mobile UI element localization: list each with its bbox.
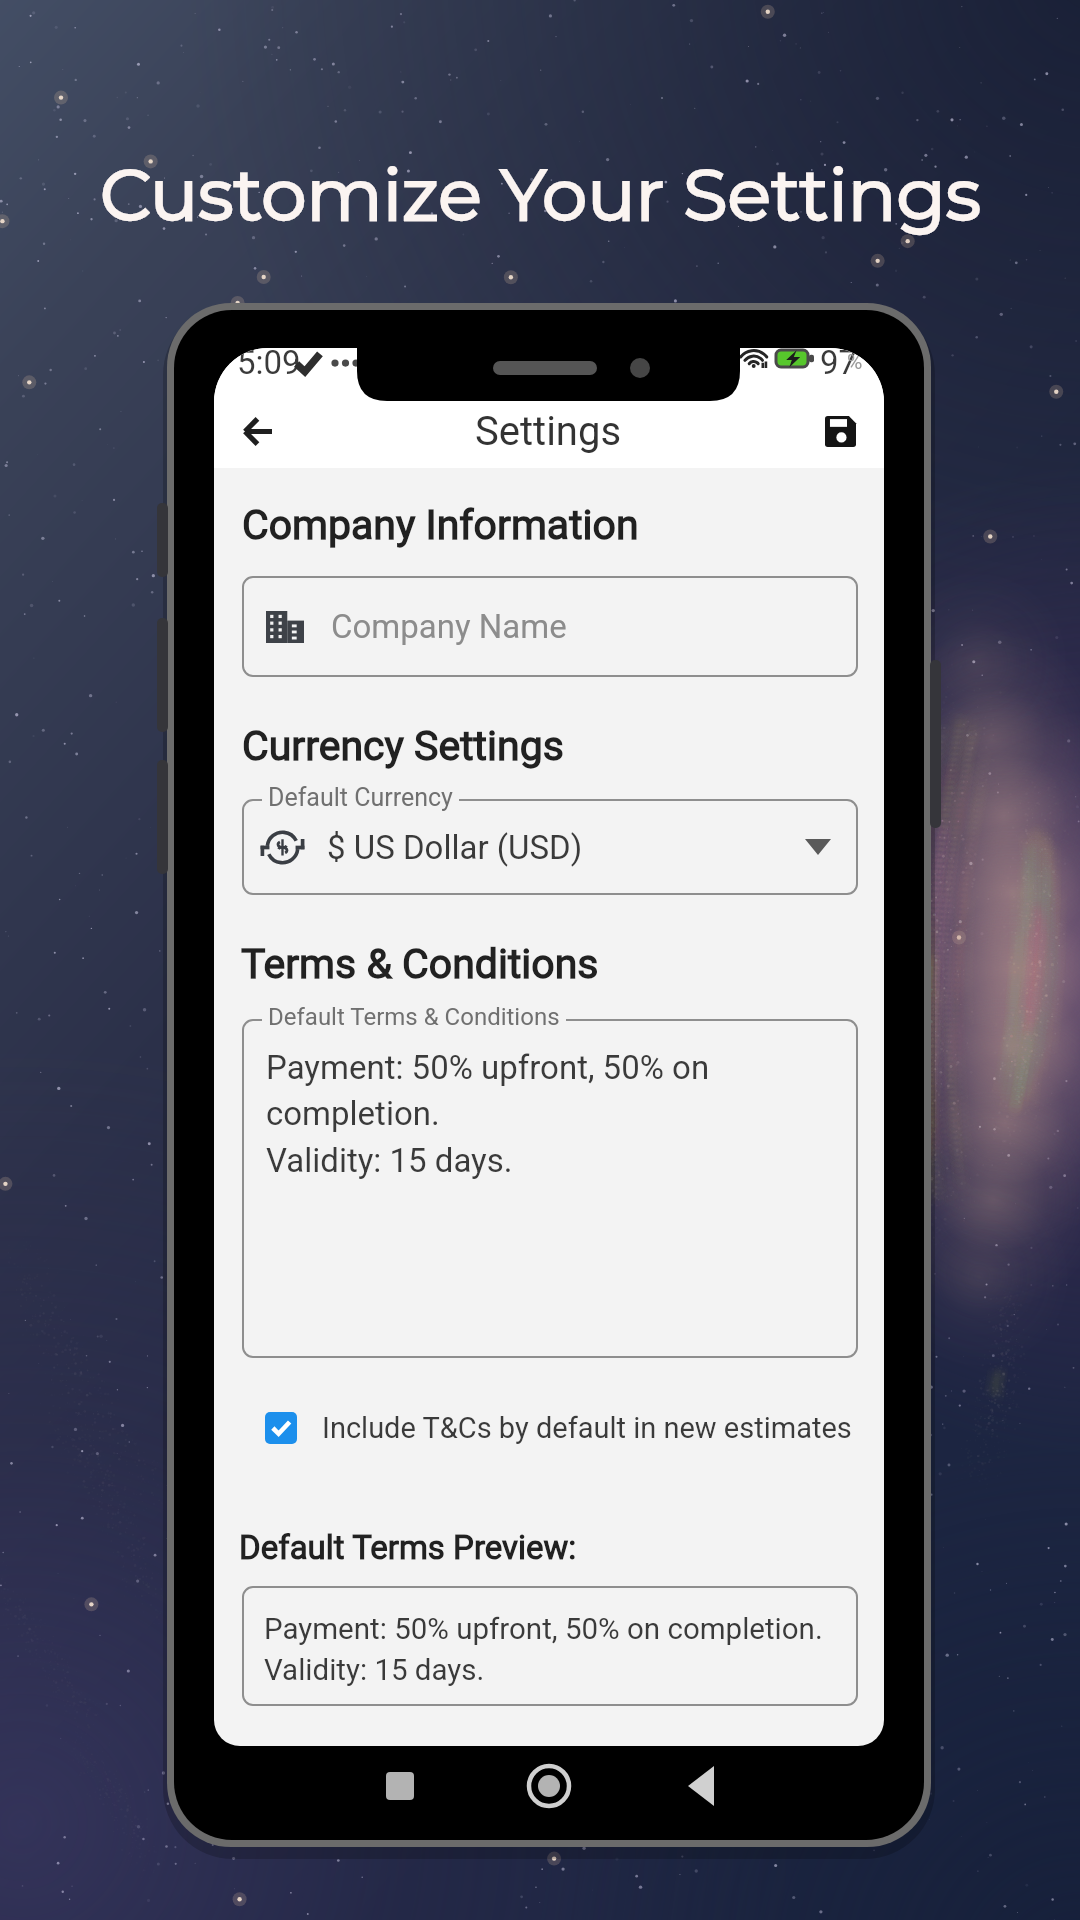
staticText: 97 [820, 348, 858, 382]
button[interactable]: Payment: 50% upfront, 50% on completion.… [243, 1587, 857, 1705]
staticText: Default Currency [268, 783, 453, 812]
staticText: $ US Dollar (USD) [327, 828, 583, 867]
staticText: Default Terms & Conditions [268, 1003, 560, 1031]
button[interactable]: Back [226, 399, 290, 463]
button[interactable]: $ US Dollar (USD) [243, 800, 857, 894]
staticText: Payment: 50% upfront, 50% on completion.… [264, 1612, 823, 1688]
staticText: Payment: 50% upfront, 50% on completion.… [266, 1048, 710, 1180]
staticText: Company Name [331, 607, 567, 646]
staticText: Default Terms Preview: [239, 1528, 577, 1567]
staticText: % [847, 350, 863, 375]
staticText: Customize Your Settings [100, 150, 981, 238]
staticText: Include T&Cs by default in new estimates [322, 1411, 852, 1445]
staticText: Company Information [242, 501, 639, 549]
button[interactable]: Save [808, 399, 872, 463]
button[interactable]: Company Name [243, 577, 857, 676]
button[interactable]: Include T&Cs by default in new estimates [265, 1408, 852, 1448]
staticText: Settings [475, 408, 622, 455]
staticText: Currency Settings [242, 722, 564, 770]
staticText: Terms & Conditions [241, 940, 599, 988]
staticText: 5:09 [237, 348, 301, 382]
button[interactable]: Payment: 50% upfront, 50% on completion.… [243, 1020, 857, 1357]
